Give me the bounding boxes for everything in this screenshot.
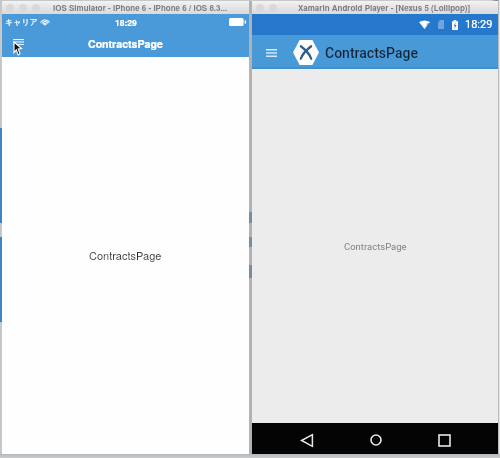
staticText: 18:29 [115,16,137,28]
button[interactable] [6,4,14,12]
button[interactable] [19,4,27,12]
button[interactable]: Menu [8,31,29,52]
staticText: ContractsPage [344,241,407,252]
button[interactable] [32,4,40,12]
button[interactable]: Back [293,426,321,454]
staticText: キャリア [5,17,38,27]
button[interactable] [256,4,264,12]
staticText: Xamarin Android Player - [Nexus 5 (Lolli… [298,2,471,13]
button[interactable]: Home [362,426,390,454]
button[interactable] [269,4,277,12]
staticText: 18:29 [465,18,493,31]
button[interactable]: Navigation menu [261,43,281,63]
staticText: ContractsPage [88,36,163,51]
staticText: ContractsPage [325,45,418,61]
button[interactable]: Recent apps [430,426,458,454]
staticText: iOS Simulator - iPhone 6 - iPhone 6 / iO… [53,2,228,13]
staticText: ContractsPage [89,247,162,263]
